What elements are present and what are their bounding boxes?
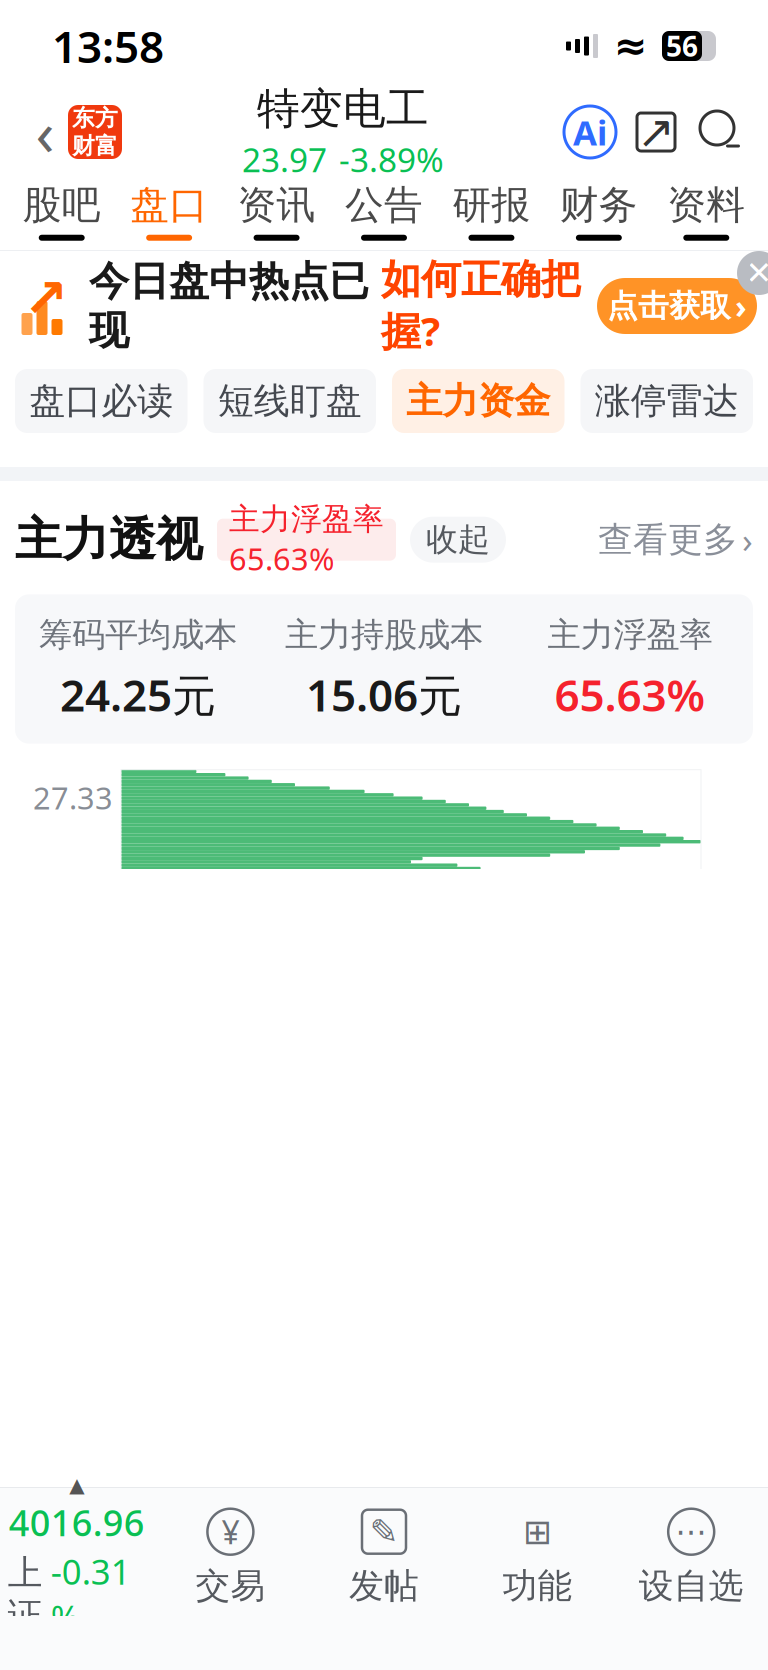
- button[interactable]: 短线盯盘: [203, 369, 376, 433]
- staticText: 23.97: [242, 137, 327, 181]
- button[interactable]: 资讯: [223, 172, 330, 250]
- staticText: 盘口必读: [29, 379, 173, 423]
- staticText: 股吧: [23, 181, 101, 229]
- button[interactable]: ¥: [154, 1507, 307, 1607]
- staticText: 主力持股成本: [285, 614, 483, 655]
- staticText: 资讯: [238, 181, 316, 229]
- staticText: 56: [666, 27, 698, 65]
- button[interactable]: 盘口必读: [15, 369, 187, 433]
- staticText: ›: [742, 517, 753, 563]
- button[interactable]: ⊞: [461, 1507, 614, 1607]
- staticText: -43.6亿: [404, 1473, 541, 1528]
- staticText: ▲: [69, 1474, 84, 1496]
- staticText: -0.31%: [51, 1548, 131, 1640]
- button[interactable]: 关闭: [737, 251, 768, 295]
- staticText: 主力透视: [15, 511, 203, 568]
- staticText: 查看更多: [598, 518, 738, 561]
- button[interactable]: 研报: [438, 172, 545, 250]
- button[interactable]: ↗: [0, 251, 768, 361]
- staticText: 设自选: [639, 1565, 744, 1607]
- staticText: 主力资金: [406, 379, 550, 423]
- button[interactable]: 公告: [330, 172, 438, 250]
- staticText: ⊞: [523, 1512, 552, 1551]
- staticText: 15.06元: [306, 665, 462, 724]
- button[interactable]: 分享: [634, 110, 678, 154]
- staticText: 东方: [72, 104, 118, 132]
- staticText: 公告: [345, 181, 423, 229]
- button[interactable]: 涨停雷达: [580, 369, 753, 433]
- button[interactable]: 收起: [410, 517, 506, 563]
- staticText: 发帖: [349, 1565, 419, 1607]
- staticText: 如何正确把握?: [381, 255, 581, 357]
- staticText: 上证: [8, 1552, 43, 1637]
- staticText: Ai: [573, 109, 607, 155]
- staticText: 4016.96: [9, 1498, 145, 1546]
- staticText: 财富: [72, 132, 118, 160]
- button[interactable]: 东方财富: [68, 105, 122, 159]
- staticText: 交易: [195, 1565, 265, 1607]
- staticText: ¥: [221, 1510, 239, 1553]
- staticText: 24.25元: [60, 665, 216, 724]
- button[interactable]: 资料: [653, 172, 760, 250]
- staticText: 13:58: [52, 17, 164, 75]
- staticText: ⋯: [675, 1513, 707, 1550]
- staticText: ✕: [745, 255, 768, 291]
- staticText: ›: [735, 285, 747, 327]
- staticText: 盘口: [130, 181, 208, 229]
- staticText: 涨停雷达: [595, 379, 739, 423]
- button[interactable]: 查看更多: [598, 517, 753, 563]
- button[interactable]: 财务: [545, 172, 652, 250]
- button[interactable]: 股吧: [8, 172, 115, 250]
- staticText: ‹: [35, 91, 54, 173]
- staticText: 财务: [560, 181, 638, 229]
- button[interactable]: ▲: [0, 1474, 154, 1640]
- button[interactable]: 盘口: [115, 172, 223, 250]
- staticText: -0.44%: [52, 1452, 184, 1507]
- staticText: 469亿: [594, 1452, 707, 1507]
- staticText: 功能: [503, 1565, 573, 1607]
- button[interactable]: 主力资金: [392, 369, 564, 433]
- staticText: 收起: [426, 520, 490, 559]
- staticText: -34.1亿: [227, 1452, 364, 1507]
- staticText: 主力浮盈率: [547, 614, 712, 655]
- button[interactable]: ✎: [307, 1507, 461, 1607]
- staticText: ≈: [614, 23, 648, 69]
- staticText: 筹码平均成本: [39, 614, 237, 655]
- staticText: 65.63%: [554, 665, 705, 724]
- staticText: ↗: [637, 106, 675, 158]
- staticText: ✎: [369, 1512, 398, 1551]
- button[interactable]: AI 助手: [564, 106, 616, 158]
- staticText: 主力浮盈率65.63%: [229, 500, 384, 579]
- staticText: 资料: [667, 181, 745, 229]
- button[interactable]: 搜索: [696, 107, 746, 157]
- staticText: ↗: [23, 268, 68, 328]
- staticText: 今日盘中热点已现: [89, 257, 369, 355]
- button[interactable]: ⋯: [614, 1507, 768, 1607]
- staticText: 短线盯盘: [218, 379, 362, 423]
- staticText: 27.33: [33, 777, 113, 818]
- staticText: -3.89%: [339, 137, 444, 181]
- staticText: 特变电工: [257, 83, 429, 135]
- button[interactable]: 返回: [22, 102, 68, 162]
- staticText: 点击获取: [607, 287, 731, 325]
- staticText: 研报: [452, 181, 530, 229]
